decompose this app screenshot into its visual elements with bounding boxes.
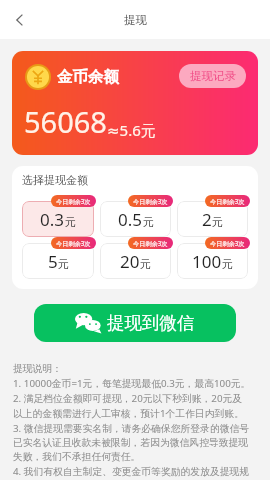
staticText: 提现说明： 1. 10000金币=1元，每笔提现最低0.3元，最高100元。 2…: [13, 363, 251, 480]
button[interactable]: 0.3: [22, 201, 94, 237]
button[interactable]: 2: [177, 201, 248, 237]
staticText: 0.3: [40, 208, 65, 231]
staticText: 元: [222, 257, 233, 271]
staticText: 20: [120, 250, 140, 273]
staticText: 元: [58, 257, 69, 271]
staticText: 提现记录: [190, 69, 236, 83]
staticText: 今日剩余3次: [133, 239, 168, 247]
staticText: 今日剩余3次: [56, 239, 91, 247]
staticText: ≈5.6元: [107, 120, 156, 140]
button[interactable]: 20: [100, 243, 171, 279]
button[interactable]: 5: [22, 243, 94, 279]
staticText: 提现到微信: [107, 312, 195, 334]
button[interactable]: 100: [177, 243, 248, 279]
staticText: 56068: [24, 102, 107, 141]
staticText: 今日剩余3次: [210, 239, 245, 247]
staticText: 2: [202, 208, 212, 231]
staticText: 今日剩余3次: [56, 197, 91, 205]
button[interactable]: 0.5: [100, 201, 171, 237]
button[interactable]: 提现记录: [179, 64, 246, 88]
staticText: 元: [140, 257, 151, 271]
staticText: 今日剩余3次: [133, 197, 168, 205]
staticText: 5: [48, 250, 58, 273]
staticText: 元: [212, 215, 223, 229]
button[interactable]: Back: [6, 7, 32, 33]
staticText: 今日剩余3次: [210, 197, 245, 205]
button[interactable]: 提现到微信: [34, 304, 236, 342]
staticText: 提现: [124, 13, 147, 27]
staticText: 0.5: [118, 208, 143, 231]
staticText: 选择提现金额: [22, 173, 88, 187]
staticText: 元: [143, 215, 154, 229]
staticText: 100: [192, 250, 222, 273]
staticText: 金币余额: [57, 67, 119, 87]
staticText: 元: [65, 215, 76, 229]
